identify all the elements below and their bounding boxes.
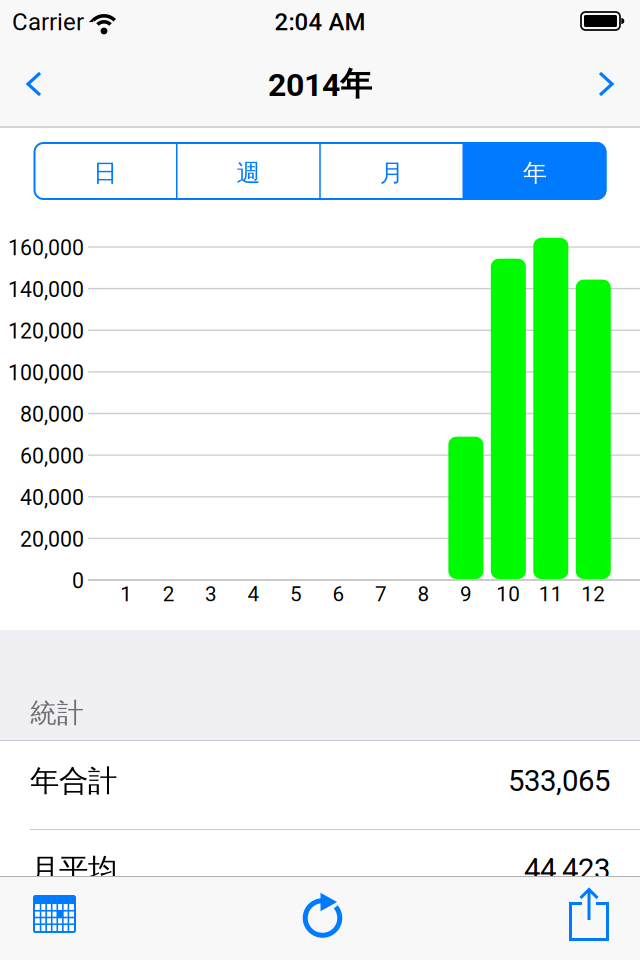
staticText: 44,423 <box>524 852 610 887</box>
staticText: 12 <box>581 582 605 606</box>
button[interactable]: Calendar <box>0 876 76 933</box>
staticText: 40,000 <box>20 485 84 510</box>
staticText: 20,000 <box>20 527 84 552</box>
staticText: 60,000 <box>20 444 84 469</box>
button[interactable]: 日 <box>33 142 177 200</box>
staticText: 11 <box>539 582 563 606</box>
staticText: Carrier <box>12 8 84 36</box>
staticText: 6 <box>332 582 344 606</box>
staticText: 533,065 <box>508 764 610 798</box>
staticText: 120,000 <box>8 319 84 344</box>
staticText: 2:04 AM <box>274 8 365 36</box>
staticText: 2014年 <box>268 64 372 104</box>
button[interactable]: 週 <box>177 142 320 200</box>
staticText: 日 <box>93 158 117 188</box>
button[interactable]: Next Year <box>597 40 640 127</box>
staticText: 8 <box>417 582 429 606</box>
staticText: 統計 <box>30 696 84 730</box>
staticText: 3 <box>205 582 217 606</box>
staticText: 2 <box>163 582 175 606</box>
button[interactable]: 月 <box>320 142 463 200</box>
button[interactable]: Previous Year <box>0 40 43 127</box>
staticText: 9 <box>460 582 472 606</box>
button[interactable]: Refresh <box>300 876 344 938</box>
staticText: 週 <box>236 158 260 188</box>
staticText: 7 <box>375 582 387 606</box>
staticText: 5 <box>290 582 302 606</box>
staticText: 月平均 <box>30 851 117 888</box>
staticText: 1 <box>120 582 132 606</box>
button[interactable]: 年合計 <box>0 741 640 829</box>
staticText: 100,000 <box>8 360 84 385</box>
staticText: 140,000 <box>8 277 84 302</box>
staticText: 0 <box>72 568 84 593</box>
staticText: 10 <box>496 582 520 606</box>
button[interactable]: Share <box>569 876 640 941</box>
staticText: 80,000 <box>20 402 84 427</box>
button[interactable]: 年 <box>463 142 606 200</box>
staticText: 年 <box>523 158 547 188</box>
staticText: 年合計 <box>30 762 117 799</box>
staticText: 月 <box>380 158 404 188</box>
staticText: 160,000 <box>8 235 84 260</box>
staticText: 4 <box>248 582 260 606</box>
